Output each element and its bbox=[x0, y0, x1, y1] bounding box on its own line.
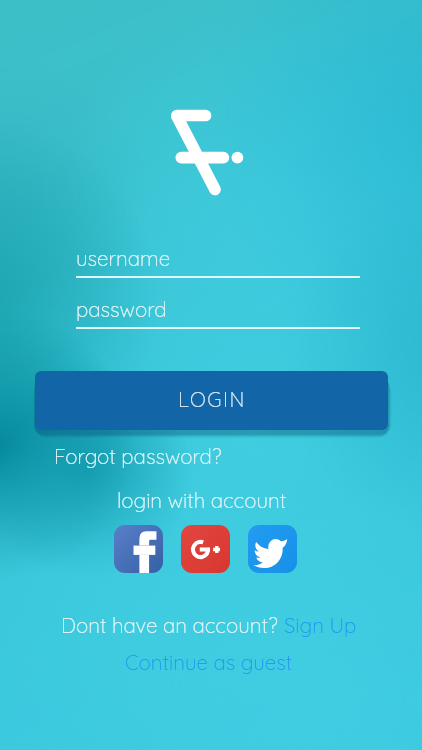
button[interactable]: Sign Up bbox=[284, 612, 357, 638]
button[interactable]: Log in with Google Plus bbox=[181, 525, 230, 573]
staticText: username bbox=[76, 245, 171, 271]
button[interactable]: LOGIN bbox=[35, 371, 388, 430]
staticText: Forgot password? bbox=[54, 443, 222, 469]
staticText: Sign Up bbox=[284, 612, 357, 638]
button[interactable]: password bbox=[76, 296, 360, 329]
staticText: password bbox=[76, 296, 167, 322]
button[interactable]: username bbox=[76, 245, 360, 278]
staticText: login with account bbox=[117, 487, 287, 513]
staticText: Dont have an account? bbox=[61, 612, 284, 638]
staticText: LOGIN bbox=[178, 386, 246, 412]
button[interactable]: Log in with Facebook bbox=[114, 525, 163, 573]
button[interactable]: Log in with Twitter bbox=[248, 525, 297, 573]
staticText: Continue as guest bbox=[125, 649, 293, 675]
button[interactable]: Forgot password? bbox=[54, 443, 222, 469]
button[interactable]: Continue as guest bbox=[125, 649, 293, 675]
